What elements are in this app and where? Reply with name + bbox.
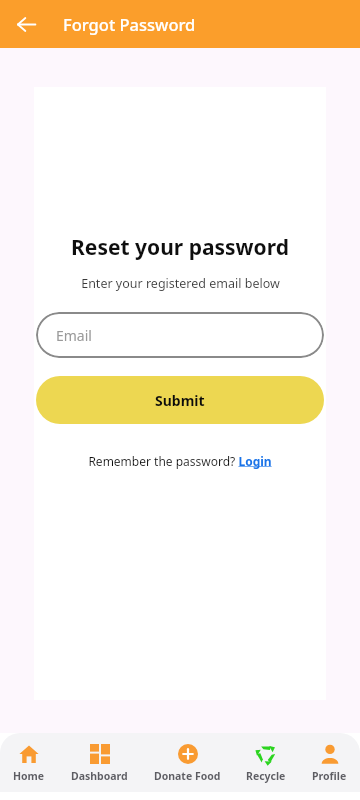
staticText: Dashboard	[71, 769, 128, 783]
staticText: Remember the password? Login	[88, 453, 272, 469]
staticText: Forgot Password	[63, 13, 196, 35]
button[interactable]: Back	[8, 6, 44, 42]
button[interactable]: Submit	[36, 376, 324, 424]
button[interactable]: Email	[36, 312, 324, 358]
button[interactable]: Home	[8, 743, 50, 784]
button[interactable]: Profile	[307, 743, 352, 784]
button[interactable]: Recycle	[241, 743, 291, 784]
button[interactable]: Donate Food	[149, 743, 226, 784]
staticText: Reset your password	[71, 233, 289, 262]
button[interactable]: Remember the password? Login	[84, 449, 276, 473]
staticText: Recycle	[246, 769, 286, 783]
staticText: Profile	[312, 769, 347, 783]
button[interactable]: Dashboard	[66, 743, 133, 784]
staticText: Submit	[155, 391, 205, 410]
staticText: Enter your registered email below	[81, 275, 280, 292]
staticText: Donate Food	[154, 769, 221, 783]
staticText: Home	[13, 769, 45, 783]
staticText: Email	[56, 326, 92, 345]
